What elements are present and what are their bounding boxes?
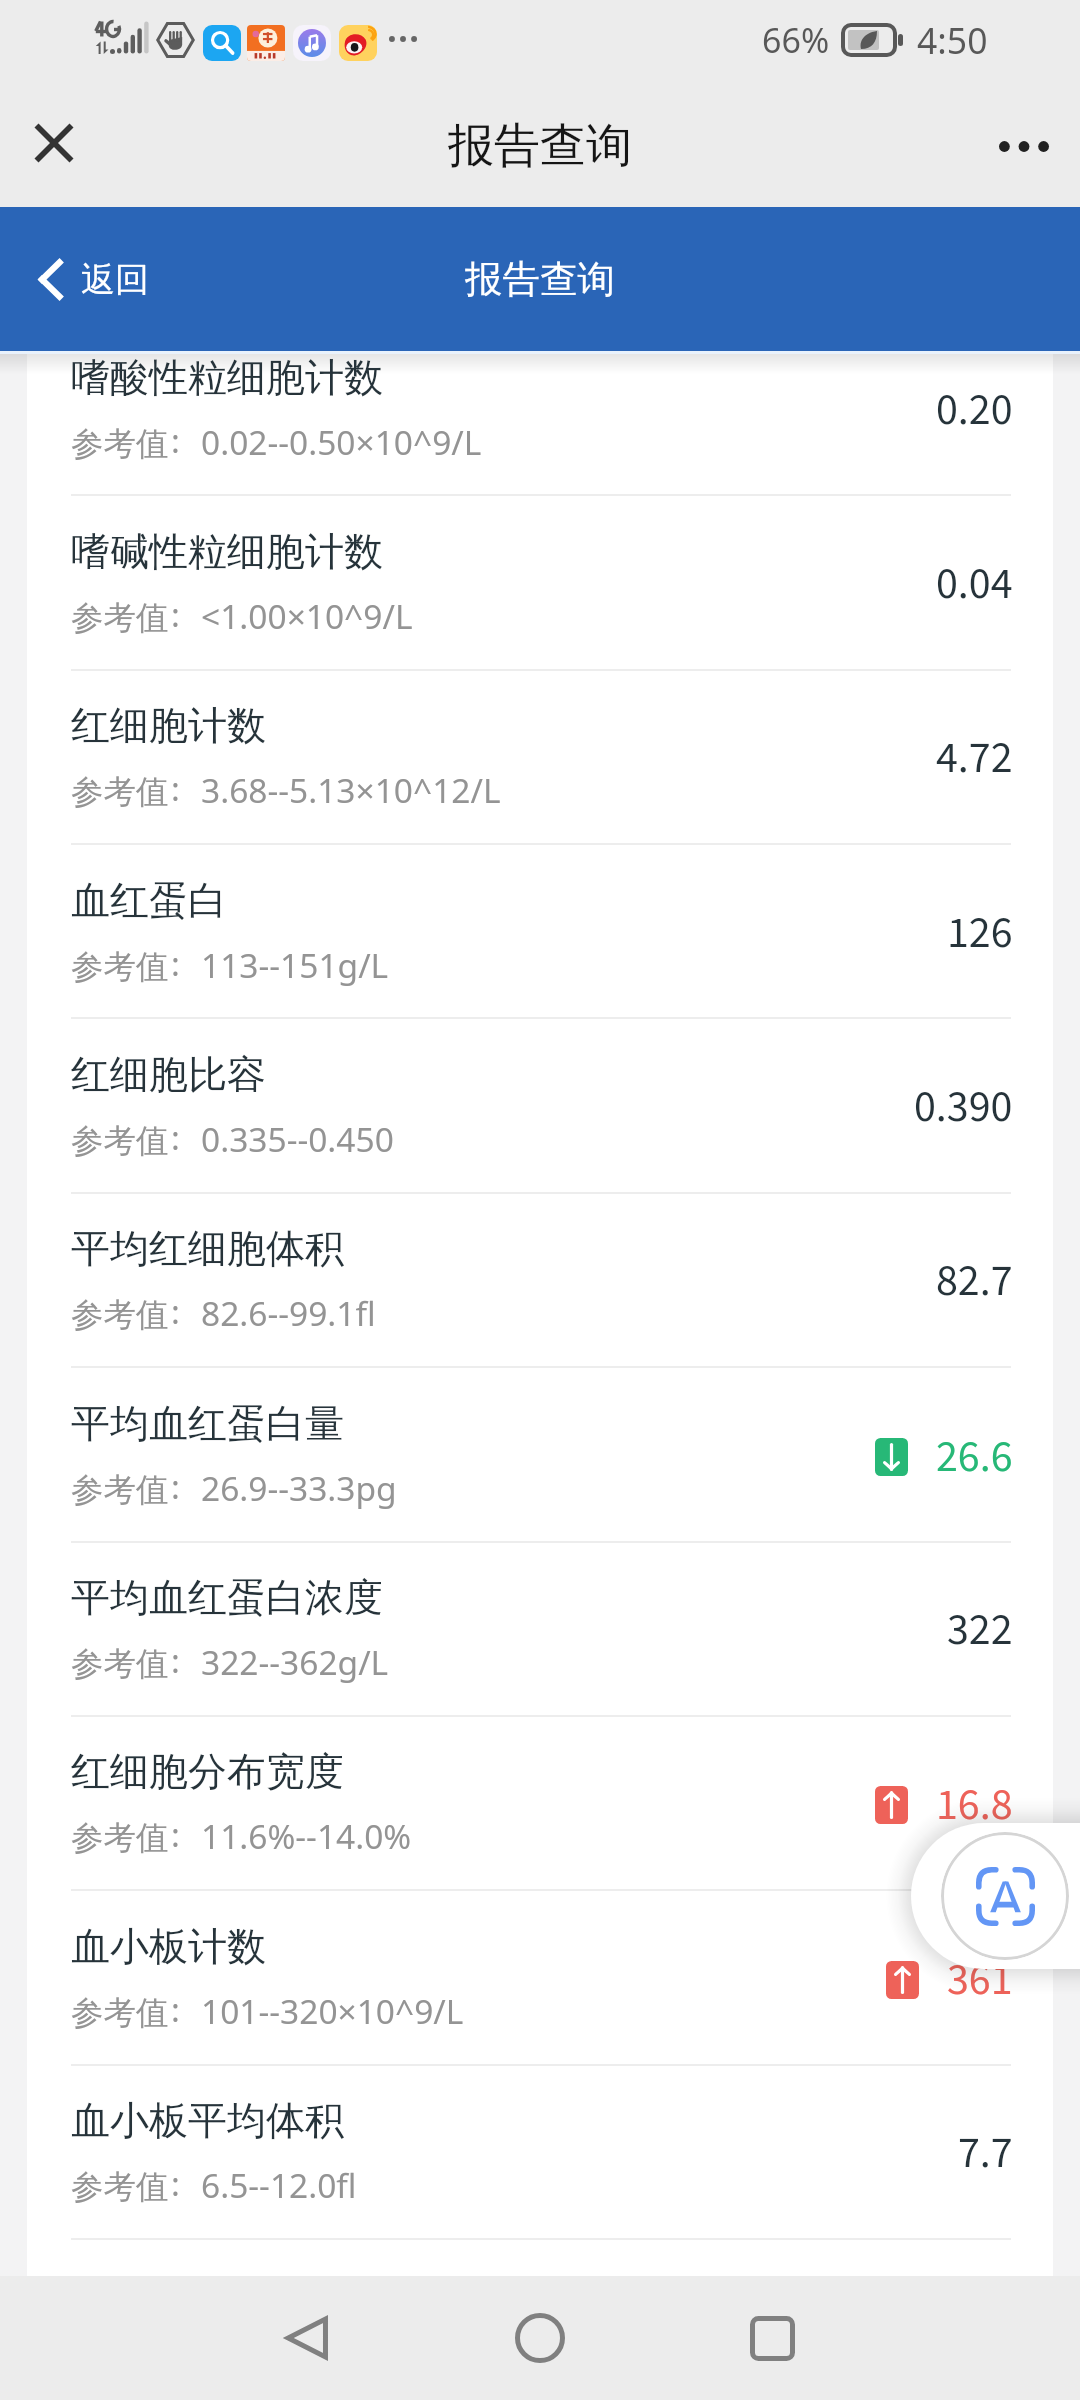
staticText: 322 (947, 1599, 1013, 1662)
staticText: 82.7 (936, 1250, 1013, 1313)
staticText: 报告查询 (465, 256, 615, 303)
button[interactable]: Scan (941, 1832, 1069, 1960)
staticText: 7.7 (958, 2122, 1013, 2185)
staticText: 返回 (81, 258, 149, 301)
staticText: 322--362g/L (201, 1639, 389, 1685)
staticText: : (171, 1812, 180, 1857)
button[interactable]: Back (248, 2278, 368, 2398)
staticText: 361 (947, 1949, 1013, 2012)
staticText: 0.04 (936, 553, 1013, 616)
staticText: 平均血红蛋白量 (71, 1399, 344, 1448)
staticText: 红细胞计数 (71, 701, 266, 750)
staticText: : (171, 1115, 180, 1160)
button[interactable]: 红细胞分布宽度 (27, 1716, 1053, 1889)
staticText: <1.00×10^9/L (201, 593, 413, 639)
button[interactable]: Recents (712, 2278, 832, 2398)
staticText: 6.5--12.0fl (201, 2162, 357, 2208)
staticText: 参考值 (71, 772, 169, 813)
staticText: 0.02--0.50×10^9/L (201, 419, 482, 465)
staticText: 红细胞比容 (71, 1050, 266, 1099)
button[interactable]: 嗜碱性粒细胞计数 (27, 496, 1053, 669)
staticText: : (171, 1289, 180, 1334)
staticText: 嗜碱性粒细胞计数 (71, 527, 383, 576)
staticText: 126 (947, 902, 1013, 965)
staticText: 11.6%--14.0% (201, 1813, 412, 1859)
staticText: : (171, 941, 180, 986)
staticText: 0.20 (936, 379, 1013, 442)
staticText: 参考值 (71, 1644, 169, 1685)
staticText: 平均红细胞体积 (71, 1224, 344, 1273)
button[interactable]: 平均红细胞体积 (27, 1193, 1053, 1366)
button[interactable]: 平均血红蛋白浓度 (27, 1542, 1053, 1715)
staticText: 3.68--5.13×10^12/L (201, 767, 501, 813)
button[interactable]: 血小板计数 (27, 1891, 1053, 2064)
staticText: 82.6--99.1fl (201, 1290, 376, 1336)
button[interactable]: 血小板平均体积 (27, 2065, 1053, 2238)
staticText: 平均血红蛋白浓度 (71, 1573, 383, 1622)
staticText: 66% (762, 17, 830, 63)
staticText: 参考值 (71, 2167, 169, 2208)
button[interactable]: 红细胞计数 (27, 670, 1053, 843)
staticText: 101--320×10^9/L (201, 1988, 464, 2034)
staticText: 血小板平均体积 (71, 2096, 344, 2145)
staticText: 红细胞分布宽度 (71, 1747, 344, 1796)
button[interactable]: 平均血红蛋白量 (27, 1368, 1053, 1541)
staticText: 113--151g/L (201, 942, 389, 988)
button[interactable]: 嗜酸性粒细胞计数 (27, 351, 1053, 495)
button[interactable]: 红细胞比容 (27, 1019, 1053, 1192)
staticText: 0.390 (914, 1076, 1013, 1139)
button[interactable]: Home (480, 2278, 600, 2398)
staticText: 参考值 (71, 947, 169, 988)
staticText: 16.8 (936, 1774, 1013, 1837)
staticText: : (171, 418, 180, 463)
staticText: : (171, 1464, 180, 1509)
staticText: 参考值 (71, 424, 169, 465)
button[interactable]: Close (0, 90, 112, 202)
staticText: : (171, 1638, 180, 1683)
staticText: 0.335--0.450 (201, 1116, 394, 1162)
staticText: 参考值 (71, 1470, 169, 1511)
staticText: : (171, 1987, 180, 2032)
staticText: 4.72 (936, 727, 1013, 790)
button[interactable]: 返回 (39, 258, 149, 301)
button[interactable]: More options (968, 90, 1080, 202)
staticText: 血小板计数 (71, 1922, 266, 1971)
staticText: 参考值 (71, 1818, 169, 1859)
staticText: 嗜酸性粒细胞计数 (71, 353, 383, 402)
staticText: 参考值 (71, 1121, 169, 1162)
staticText: 报告查询 (448, 117, 632, 175)
staticText: 4:50 (917, 16, 988, 64)
staticText: 26.6 (936, 1426, 1013, 1489)
staticText: : (171, 766, 180, 811)
staticText: : (171, 2161, 180, 2206)
staticText: : (171, 592, 180, 637)
staticText: 血红蛋白 (71, 876, 227, 925)
staticText: 参考值 (71, 598, 169, 639)
button[interactable]: 血红蛋白 (27, 845, 1053, 1018)
staticText: 参考值 (71, 1993, 169, 2034)
staticText: 26.9--33.3pg (201, 1465, 397, 1511)
staticText: 参考值 (71, 1295, 169, 1336)
